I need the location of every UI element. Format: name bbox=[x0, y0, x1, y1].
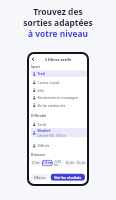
staticText: Vélo bbox=[37, 88, 44, 93]
button[interactable]: Trail bbox=[31, 70, 87, 77]
button[interactable]: 50+ km bbox=[76, 160, 86, 166]
staticText: 15-30 km bbox=[54, 160, 64, 166]
staticText: Course à pied bbox=[37, 80, 59, 85]
staticText: 50+ km bbox=[76, 161, 85, 165]
staticText: Dénivelé 500 - 1000 m bbox=[37, 133, 65, 137]
staticText: 30+ km bbox=[65, 161, 74, 165]
button[interactable]: Effacer bbox=[31, 173, 48, 181]
button[interactable]: 5-15 km bbox=[42, 160, 53, 166]
staticText: 5-15 km bbox=[42, 161, 53, 165]
staticText: à votre niveau bbox=[28, 28, 88, 39]
button[interactable]: Vélo bbox=[31, 86, 87, 93]
staticText: Ski de randonnée bbox=[37, 103, 65, 108]
button[interactable]: Modéré bbox=[31, 128, 87, 137]
button[interactable]: Difficile bbox=[31, 142, 87, 149]
staticText: Trouvez des bbox=[33, 6, 83, 17]
staticText: Voir les résultats bbox=[54, 175, 81, 180]
button[interactable]: Retour bbox=[30, 56, 36, 62]
staticText: Trail bbox=[37, 71, 45, 76]
staticText: Facile bbox=[37, 122, 46, 127]
staticText: Difficile bbox=[37, 143, 49, 148]
button[interactable]: 15-30 km bbox=[54, 160, 64, 166]
button[interactable]: Ski de randonnée bbox=[31, 101, 87, 108]
staticText: Modéré bbox=[37, 128, 50, 133]
staticText: 0-5 km bbox=[32, 161, 40, 165]
staticText: Effacer bbox=[34, 175, 45, 180]
staticText: Randonnée en montagne bbox=[37, 95, 78, 100]
staticText: Sport bbox=[31, 64, 40, 69]
button[interactable]: Course à pied bbox=[31, 79, 87, 86]
staticText: Difficulté bbox=[31, 113, 46, 117]
button[interactable]: Facile bbox=[31, 121, 87, 128]
staticText: sorties adaptées bbox=[23, 17, 93, 28]
button[interactable]: 0-5 km bbox=[31, 160, 41, 166]
button[interactable]: Randonnée en montagne bbox=[31, 94, 87, 101]
button[interactable]: Voir les résultats bbox=[50, 173, 85, 181]
staticText: Distance bbox=[31, 152, 45, 157]
button[interactable]: 30+ km bbox=[65, 160, 75, 166]
staticText: 3 filtres actifs bbox=[45, 57, 71, 62]
